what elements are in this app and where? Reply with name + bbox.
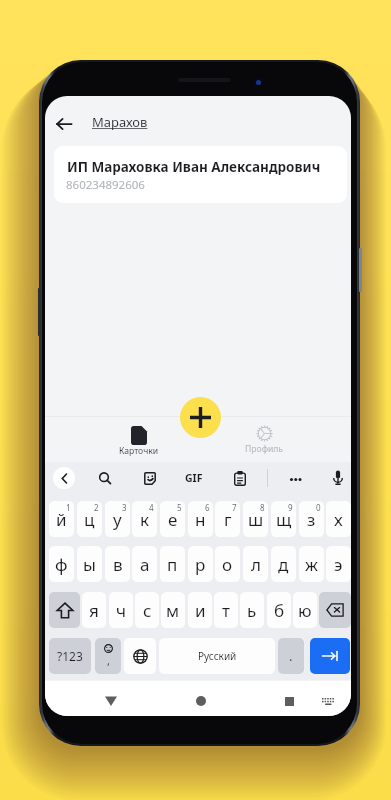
staticText: п	[167, 553, 178, 576]
staticText: 8	[260, 502, 265, 513]
staticText: э	[334, 553, 343, 576]
button[interactable]: ?123	[49, 638, 91, 674]
button[interactable]: ы	[77, 546, 102, 582]
button[interactable]: .	[278, 638, 304, 674]
staticText: з	[307, 508, 316, 531]
button[interactable]: Change language	[124, 638, 156, 674]
button[interactable]: н	[188, 501, 213, 537]
button[interactable]: л	[243, 546, 268, 582]
button[interactable]: Русский	[159, 638, 275, 674]
staticText: м	[166, 599, 180, 622]
staticText: е	[168, 508, 178, 531]
staticText: х	[334, 508, 343, 531]
staticText: ИП Мараховка Иван Александрович	[67, 158, 321, 176]
staticText: ,	[107, 653, 110, 668]
button[interactable]: с	[135, 592, 159, 628]
staticText: о	[222, 553, 233, 576]
button[interactable]: а	[132, 546, 157, 582]
button[interactable]: в	[105, 546, 130, 582]
staticText: б	[274, 599, 285, 622]
button[interactable]: ф	[49, 546, 74, 582]
staticText: а	[140, 553, 150, 576]
button[interactable]: Профиль	[234, 424, 294, 460]
button[interactable]: Add card	[180, 397, 221, 438]
staticText: т	[222, 599, 230, 622]
button[interactable]: Close keyboard toolbar	[53, 467, 75, 489]
button[interactable]: Back	[101, 691, 121, 711]
button[interactable]: Backspace	[319, 592, 351, 628]
staticText: ю	[298, 599, 312, 622]
button[interactable]: Home	[191, 691, 211, 711]
staticText: р	[195, 553, 206, 576]
staticText: Марахов	[92, 113, 148, 131]
button[interactable]: Clipboard	[229, 466, 251, 490]
button[interactable]: щ	[271, 501, 296, 537]
staticText: к	[140, 508, 150, 531]
button[interactable]: к	[132, 501, 157, 537]
button[interactable]: ь	[240, 592, 264, 628]
staticText: ?123	[57, 648, 83, 664]
staticText: 9	[288, 502, 293, 513]
staticText: ф	[55, 553, 68, 576]
button[interactable]: т	[214, 592, 238, 628]
button[interactable]: э	[326, 546, 351, 582]
staticText: л	[251, 553, 261, 576]
button[interactable]: о	[215, 546, 240, 582]
staticText: я	[89, 599, 99, 622]
button[interactable]: Hide keyboard	[318, 691, 338, 711]
staticText: 2	[94, 502, 99, 513]
staticText: н	[195, 508, 206, 531]
staticText: 1	[66, 502, 71, 513]
staticText: 7	[232, 502, 237, 513]
button[interactable]: д	[271, 546, 296, 582]
staticText: ц	[84, 508, 95, 531]
staticText: и	[195, 599, 206, 622]
button[interactable]: Recents	[279, 691, 299, 711]
button[interactable]: з	[299, 501, 324, 537]
button[interactable]: я	[82, 592, 106, 628]
button[interactable]: Voice input	[329, 465, 349, 489]
button[interactable]: ц	[77, 501, 102, 537]
button[interactable]: GIF	[180, 467, 208, 489]
button[interactable]: й	[49, 501, 74, 537]
button[interactable]: ИП Мараховка Иван Александрович	[54, 146, 347, 203]
staticText: 4	[149, 502, 154, 513]
button[interactable]: ч	[109, 592, 133, 628]
staticText: ж	[305, 553, 318, 576]
staticText: с	[143, 599, 152, 622]
staticText: ч	[116, 599, 127, 622]
staticText: в	[113, 553, 123, 576]
button[interactable]: е	[160, 501, 185, 537]
staticText: 5	[177, 502, 182, 513]
button[interactable]: г	[215, 501, 240, 537]
button[interactable]: ю	[293, 592, 317, 628]
staticText: й	[56, 508, 67, 531]
staticText: г	[224, 508, 232, 531]
staticText: .	[289, 647, 293, 665]
staticText: 860234892606	[66, 177, 145, 193]
button[interactable]: Search	[94, 467, 114, 487]
button[interactable]: ш	[243, 501, 268, 537]
button[interactable]: More options	[285, 469, 307, 489]
button[interactable]: Stickers	[139, 467, 161, 489]
button[interactable]: р	[188, 546, 213, 582]
staticText: Профиль	[245, 443, 284, 455]
staticText: 6	[205, 502, 210, 513]
button[interactable]: Emoji and comma	[95, 638, 121, 674]
staticText: Русский	[198, 649, 237, 663]
staticText: 3	[122, 502, 127, 513]
button[interactable]: у	[105, 501, 130, 537]
button[interactable]: Enter	[310, 638, 350, 674]
button[interactable]: м	[161, 592, 185, 628]
button[interactable]: п	[160, 546, 185, 582]
button[interactable]: х	[326, 501, 351, 537]
staticText: у	[113, 508, 122, 531]
button[interactable]: Карточки	[109, 424, 169, 460]
button[interactable]: Shift	[49, 592, 80, 628]
button[interactable]: и	[188, 592, 212, 628]
button[interactable]: Back	[52, 112, 76, 136]
button[interactable]: ж	[299, 546, 324, 582]
staticText: ы	[83, 553, 96, 576]
button[interactable]: б	[267, 592, 291, 628]
staticText: Карточки	[119, 445, 159, 457]
